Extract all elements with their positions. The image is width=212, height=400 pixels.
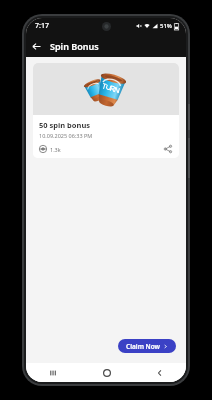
button[interactable]: 50 spin bonus xyxy=(33,63,179,158)
button[interactable]: Recent apps xyxy=(26,363,80,382)
button[interactable]: Claim Now xyxy=(118,339,176,353)
staticText: 1.3k xyxy=(50,146,61,153)
staticText: 50 spin bonus xyxy=(39,120,91,130)
staticText: 10.09.2025 06:33 PM xyxy=(39,132,93,139)
staticText: 7:17 xyxy=(35,21,49,31)
button[interactable]: Home xyxy=(80,363,133,382)
button[interactable]: 1.3k xyxy=(39,145,61,153)
button[interactable]: Share xyxy=(162,143,173,154)
button[interactable]: Back xyxy=(133,363,186,382)
staticText: Spin Bonus xyxy=(50,40,99,52)
staticText: 51% xyxy=(160,22,172,30)
button[interactable]: Back xyxy=(26,36,46,56)
staticText: Claim Now xyxy=(126,342,160,351)
